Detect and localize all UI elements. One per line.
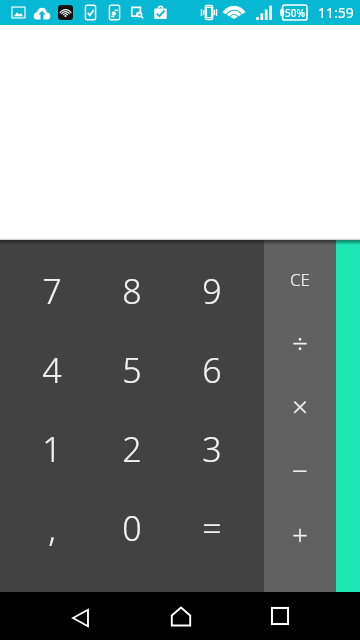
button[interactable]: × bbox=[264, 374, 336, 438]
button[interactable]: = bbox=[172, 488, 252, 567]
button[interactable]: CE bbox=[264, 248, 336, 311]
button[interactable]: 4 bbox=[12, 330, 92, 409]
button[interactable]: , bbox=[12, 488, 92, 567]
button[interactable]: 5 bbox=[92, 330, 172, 409]
button[interactable]: 8 bbox=[92, 251, 172, 330]
button[interactable]: Home bbox=[149, 592, 213, 640]
staticText: 1 bbox=[42, 426, 62, 472]
button[interactable]: Open history panel bbox=[336, 240, 360, 592]
button[interactable]: + bbox=[264, 502, 336, 566]
button[interactable]: 0 bbox=[92, 488, 172, 567]
staticText: 7 bbox=[42, 268, 62, 314]
staticText: − bbox=[292, 451, 308, 489]
staticText: 9 bbox=[202, 268, 222, 314]
staticText: , bbox=[48, 505, 56, 551]
staticText: 5 bbox=[122, 347, 142, 393]
staticText: 6 bbox=[202, 347, 222, 393]
staticText: 2 bbox=[122, 426, 142, 472]
button[interactable]: 6 bbox=[172, 330, 252, 409]
button[interactable]: 3 bbox=[172, 409, 252, 488]
button[interactable]: 1 bbox=[12, 409, 92, 488]
staticText: CE bbox=[290, 268, 310, 291]
button[interactable]: ÷ bbox=[264, 311, 336, 374]
staticText: 4 bbox=[42, 347, 62, 393]
button[interactable]: 9 bbox=[172, 251, 252, 330]
button[interactable]: − bbox=[264, 438, 336, 502]
button[interactable]: 7 bbox=[12, 251, 92, 330]
staticText: 11:59 bbox=[318, 3, 354, 22]
button[interactable]: Recent apps bbox=[248, 592, 312, 640]
staticText: 0 bbox=[122, 505, 142, 551]
button[interactable]: Back bbox=[48, 592, 112, 640]
staticText: 3 bbox=[202, 426, 222, 472]
staticText: ÷ bbox=[292, 324, 308, 362]
staticText: × bbox=[292, 387, 308, 425]
staticText: 8 bbox=[122, 268, 142, 314]
button[interactable]: 2 bbox=[92, 409, 172, 488]
staticText: + bbox=[292, 515, 308, 553]
staticText: 50% bbox=[285, 6, 305, 20]
staticText: = bbox=[202, 505, 222, 551]
